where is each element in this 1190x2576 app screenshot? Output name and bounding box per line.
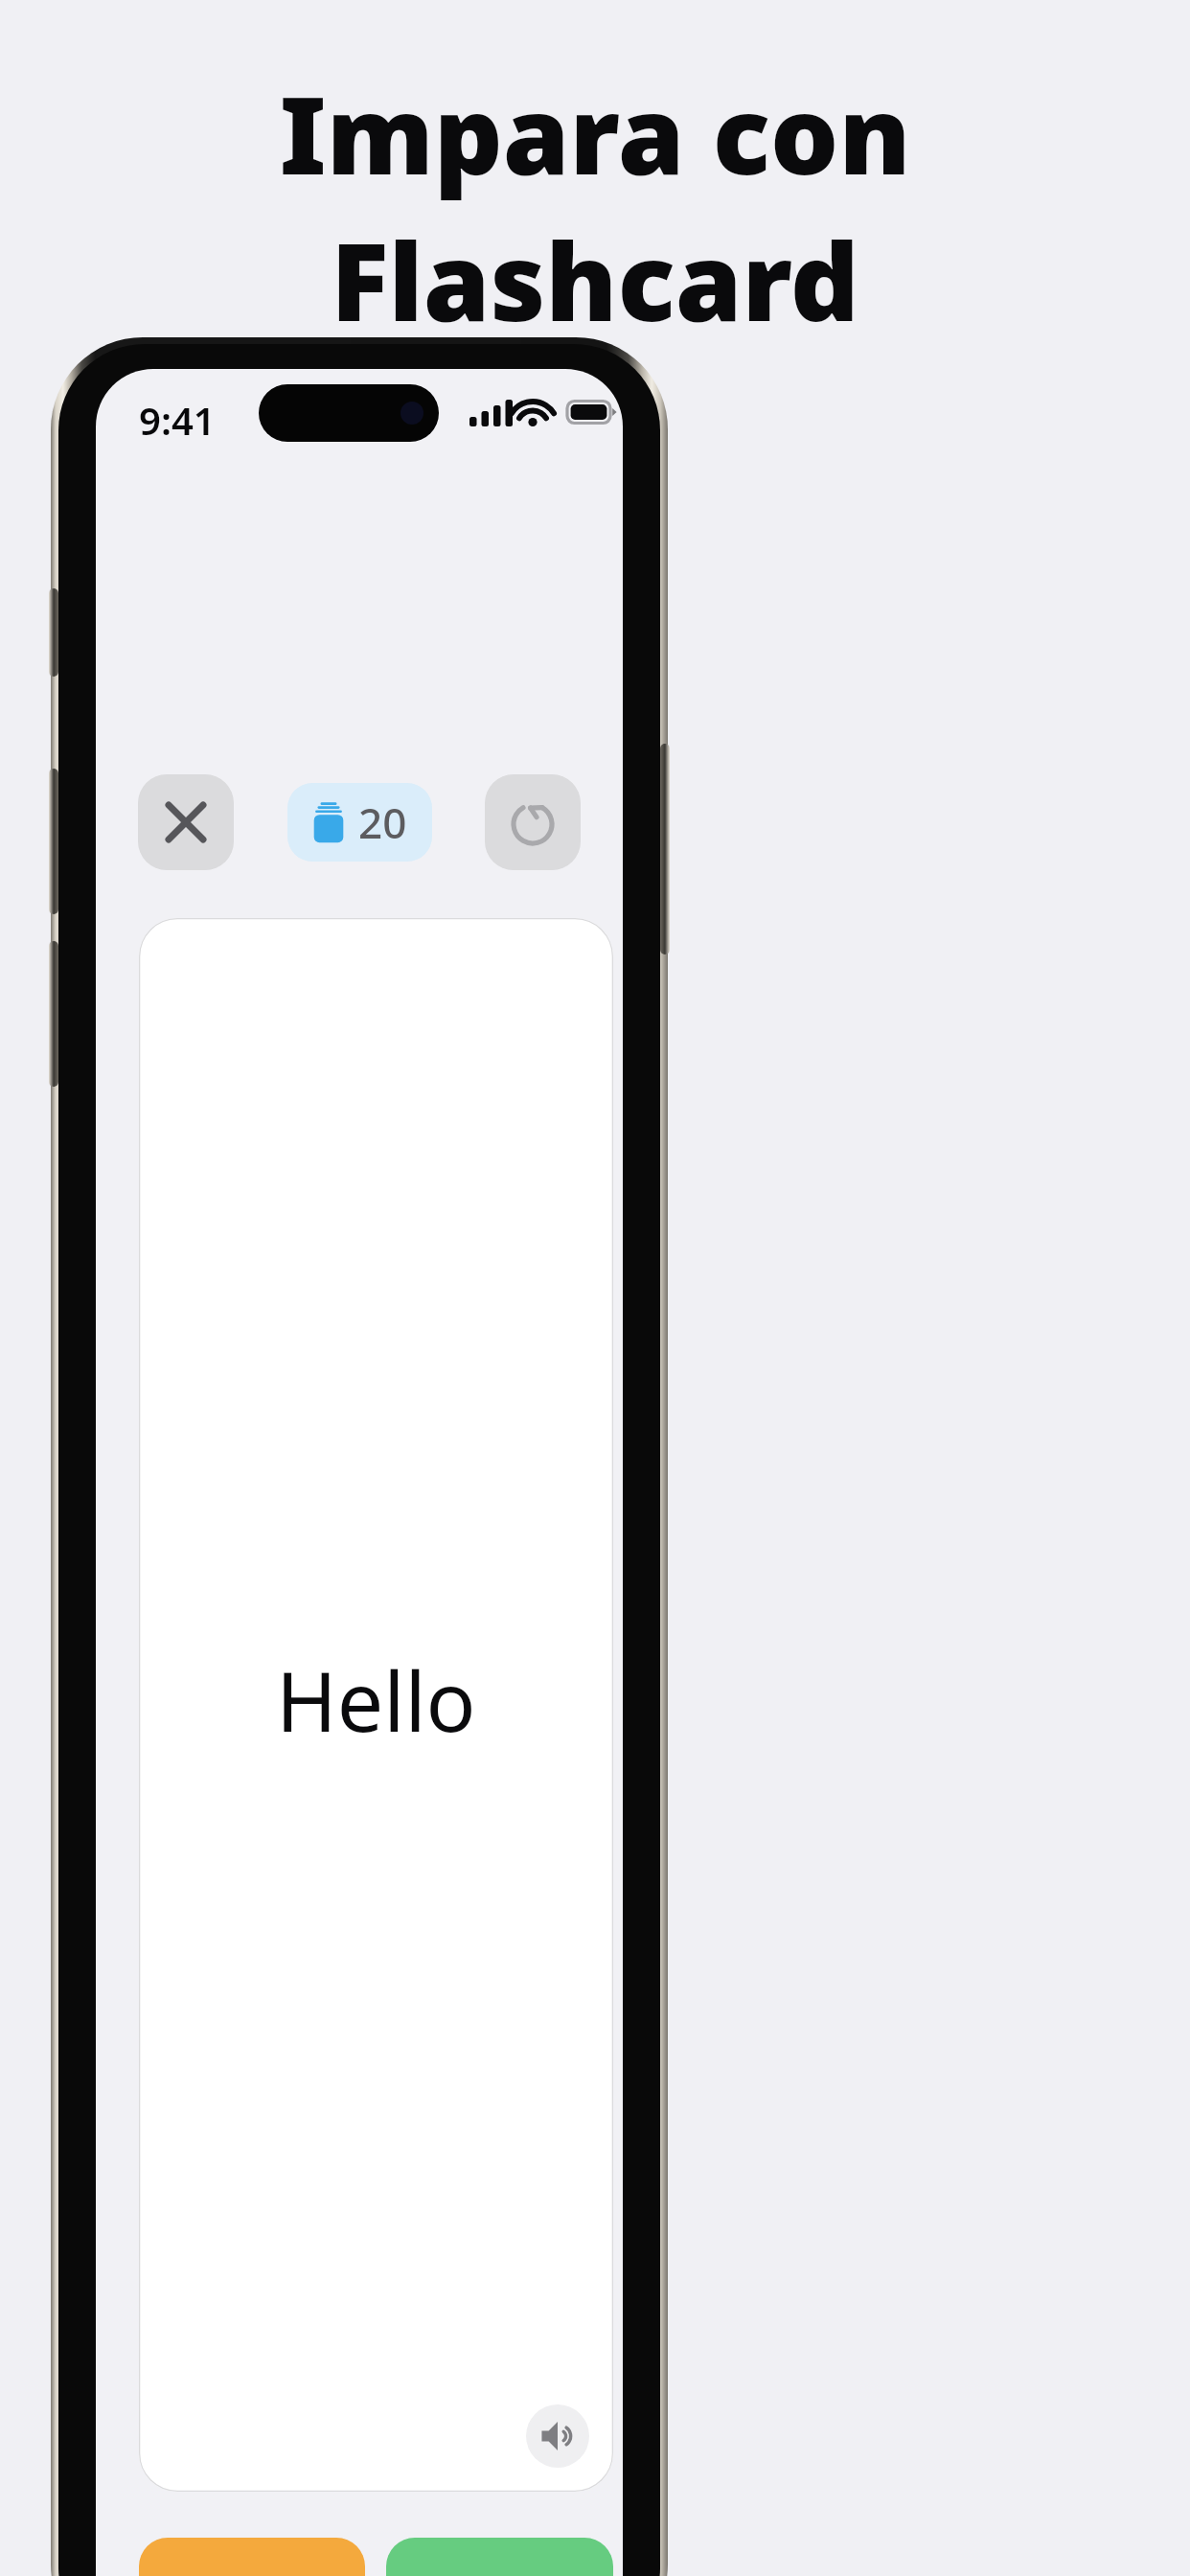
staticText: 20 (358, 793, 407, 851)
button[interactable]: Close (138, 774, 234, 870)
button[interactable]: Learned (386, 2538, 613, 2576)
button[interactable]: Play audio (526, 2404, 589, 2468)
button[interactable]: 20 (287, 783, 432, 862)
button[interactable]: Hello (139, 918, 613, 2492)
staticText: Impara con (279, 59, 911, 206)
staticText: Flashcard (331, 206, 859, 353)
staticText: 9:41 (139, 394, 216, 446)
button[interactable]: Not learned (139, 2538, 365, 2576)
staticText: Hello (276, 1644, 476, 1756)
button[interactable]: Restart (485, 774, 581, 870)
